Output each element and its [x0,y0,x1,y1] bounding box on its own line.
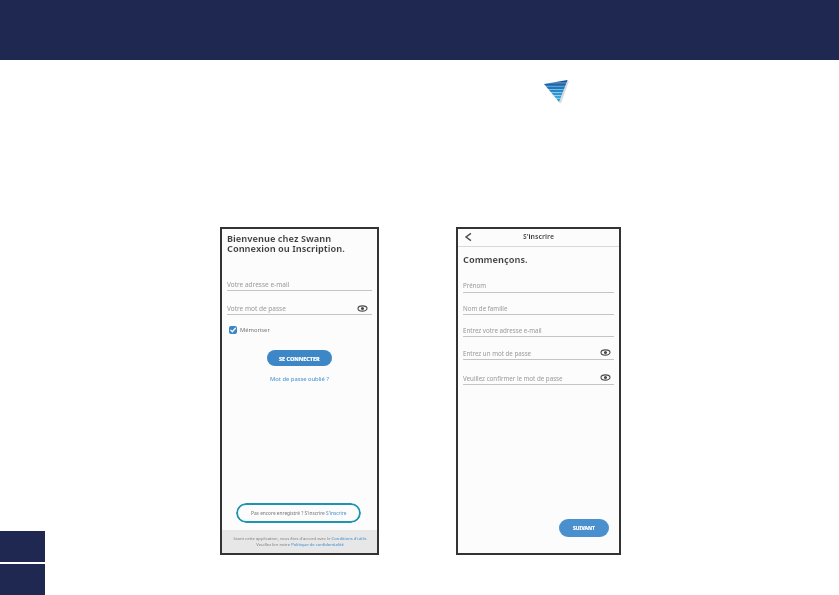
staticText: Veuillez confirmer le mot de passe [463,374,563,382]
staticText: Commençons. [463,253,528,266]
button[interactable]: Mot de passe oublié ? [220,375,379,383]
button[interactable] [465,233,472,241]
button[interactable] [601,374,610,381]
staticText: Mémoriser [240,326,270,334]
staticText: Votre adresse e-mail [227,280,290,289]
staticText: Entrez votre adresse e-mail [463,326,542,334]
staticText: SUIVANT [573,525,595,532]
staticText: Nom de famille [463,304,508,312]
button[interactable]: Mémoriser [229,326,270,334]
button[interactable]: SUIVANT [559,519,609,537]
staticText: S'inscrire [456,232,621,241]
staticText: Prénom [463,281,487,289]
staticText: Entrez un mot de passe [463,349,532,357]
button[interactable] [358,305,367,312]
button[interactable] [601,349,610,356]
button[interactable]: Pas encore enregistré ? S'inscrire S'ins… [236,503,361,523]
staticText: Pas encore enregistré ? S'inscrire S'ins… [251,510,347,517]
staticText: Votre mot de passe [227,304,286,313]
staticText: SE CONNECTER [279,355,320,362]
staticText: Bienvenue chez Swann Connexion ou Inscri… [227,232,345,255]
button[interactable]: SE CONNECTER [267,350,332,366]
staticText: lisant cette application, vous êtes d'ac… [233,536,367,548]
